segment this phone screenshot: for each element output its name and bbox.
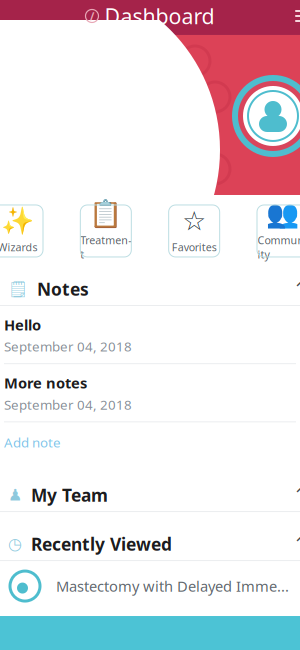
staticText: Notes <box>37 277 89 300</box>
staticText: Dashboard <box>104 2 214 30</box>
button[interactable]: 🗒 <box>0 273 300 306</box>
staticText: ⌃ <box>293 485 300 505</box>
staticText: Hello <box>4 315 41 334</box>
button[interactable]: 👥 <box>257 205 300 257</box>
staticText: 📋 <box>89 199 122 229</box>
staticText: 👥 <box>266 199 299 229</box>
staticText: Treatment <box>80 233 131 261</box>
button[interactable]: Mastectomy with Delayed Imme... <box>0 561 300 607</box>
button[interactable]: Menu <box>285 0 300 32</box>
staticText: ⌃ <box>293 534 300 554</box>
staticText: Jane Doe <box>124 102 214 130</box>
staticText: / <box>90 9 94 23</box>
staticText: ✨ <box>1 206 34 236</box>
staticText: Favorites <box>172 240 217 254</box>
staticText: Wizards <box>0 240 37 254</box>
staticText: ◷ <box>8 535 22 553</box>
button[interactable]: ☆ <box>169 205 220 257</box>
button[interactable]: 📋 <box>80 205 131 257</box>
staticText: Add note <box>4 433 61 451</box>
button[interactable]: ♟ <box>0 479 300 512</box>
button[interactable]: More notes <box>0 364 300 421</box>
staticText: Community <box>257 233 300 261</box>
staticText: More notes <box>4 373 87 393</box>
staticText: ⌃ <box>293 279 300 299</box>
staticText: ♟ <box>8 486 22 504</box>
button[interactable]: ✨ <box>0 205 43 257</box>
button[interactable]: ◷ <box>0 528 300 561</box>
staticText: September 04, 2018 <box>4 337 132 355</box>
button[interactable]: Add note <box>0 422 300 463</box>
staticText: September 04, 2018 <box>4 396 132 413</box>
staticText: 🗒 <box>8 280 28 298</box>
staticText: Mastectomy with Delayed Imme... <box>56 576 289 596</box>
button[interactable]: Hello <box>0 306 300 363</box>
staticText: My Team <box>31 484 108 507</box>
staticText: Recently Viewed <box>31 533 172 556</box>
staticText: ☆ <box>182 206 206 236</box>
